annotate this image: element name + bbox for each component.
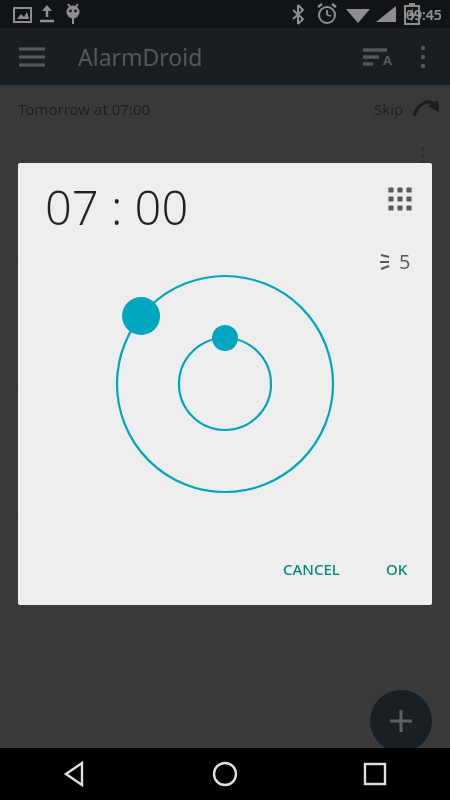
staticText: 07 : 00 (45, 175, 189, 239)
button[interactable]: Alarm options (12, 135, 440, 253)
button[interactable]: More options (400, 34, 446, 80)
staticText: CANCEL (283, 559, 340, 579)
other: Alarm options (408, 269, 438, 299)
other: Skip next alarm (412, 96, 438, 122)
button[interactable]: Snooze length 5 minutes (378, 239, 422, 283)
button[interactable]: Alarm options (12, 519, 440, 637)
button[interactable]: Add alarm (370, 690, 432, 752)
button[interactable]: Switch to keyboard input (378, 177, 422, 221)
button[interactable]: Alarm options (12, 391, 440, 509)
button[interactable]: Back (0, 748, 150, 800)
staticText: Tomorrow at 07:00 (18, 99, 151, 119)
staticText: 09:45 (406, 5, 442, 24)
button[interactable]: Tomorrow at 07:00 (0, 91, 450, 127)
other: Alarm options (408, 141, 438, 171)
button[interactable]: CANCEL (267, 549, 356, 589)
button[interactable]: Recent apps (300, 748, 450, 800)
button[interactable]: Alarm options (12, 263, 440, 381)
staticText: Skip (374, 99, 404, 119)
staticText: AlarmDroid (78, 41, 203, 72)
other: Alarm options (408, 525, 438, 555)
button[interactable]: Time dial (117, 276, 333, 492)
button[interactable]: OK (370, 549, 424, 589)
other: Alarm options (408, 397, 438, 427)
staticText: OK (386, 559, 408, 579)
button[interactable]: Home (150, 748, 300, 800)
button[interactable]: Sort alarms (354, 34, 400, 80)
staticText: A (383, 51, 392, 69)
staticText: 5 (399, 248, 411, 275)
button[interactable]: Open navigation drawer (10, 35, 54, 79)
